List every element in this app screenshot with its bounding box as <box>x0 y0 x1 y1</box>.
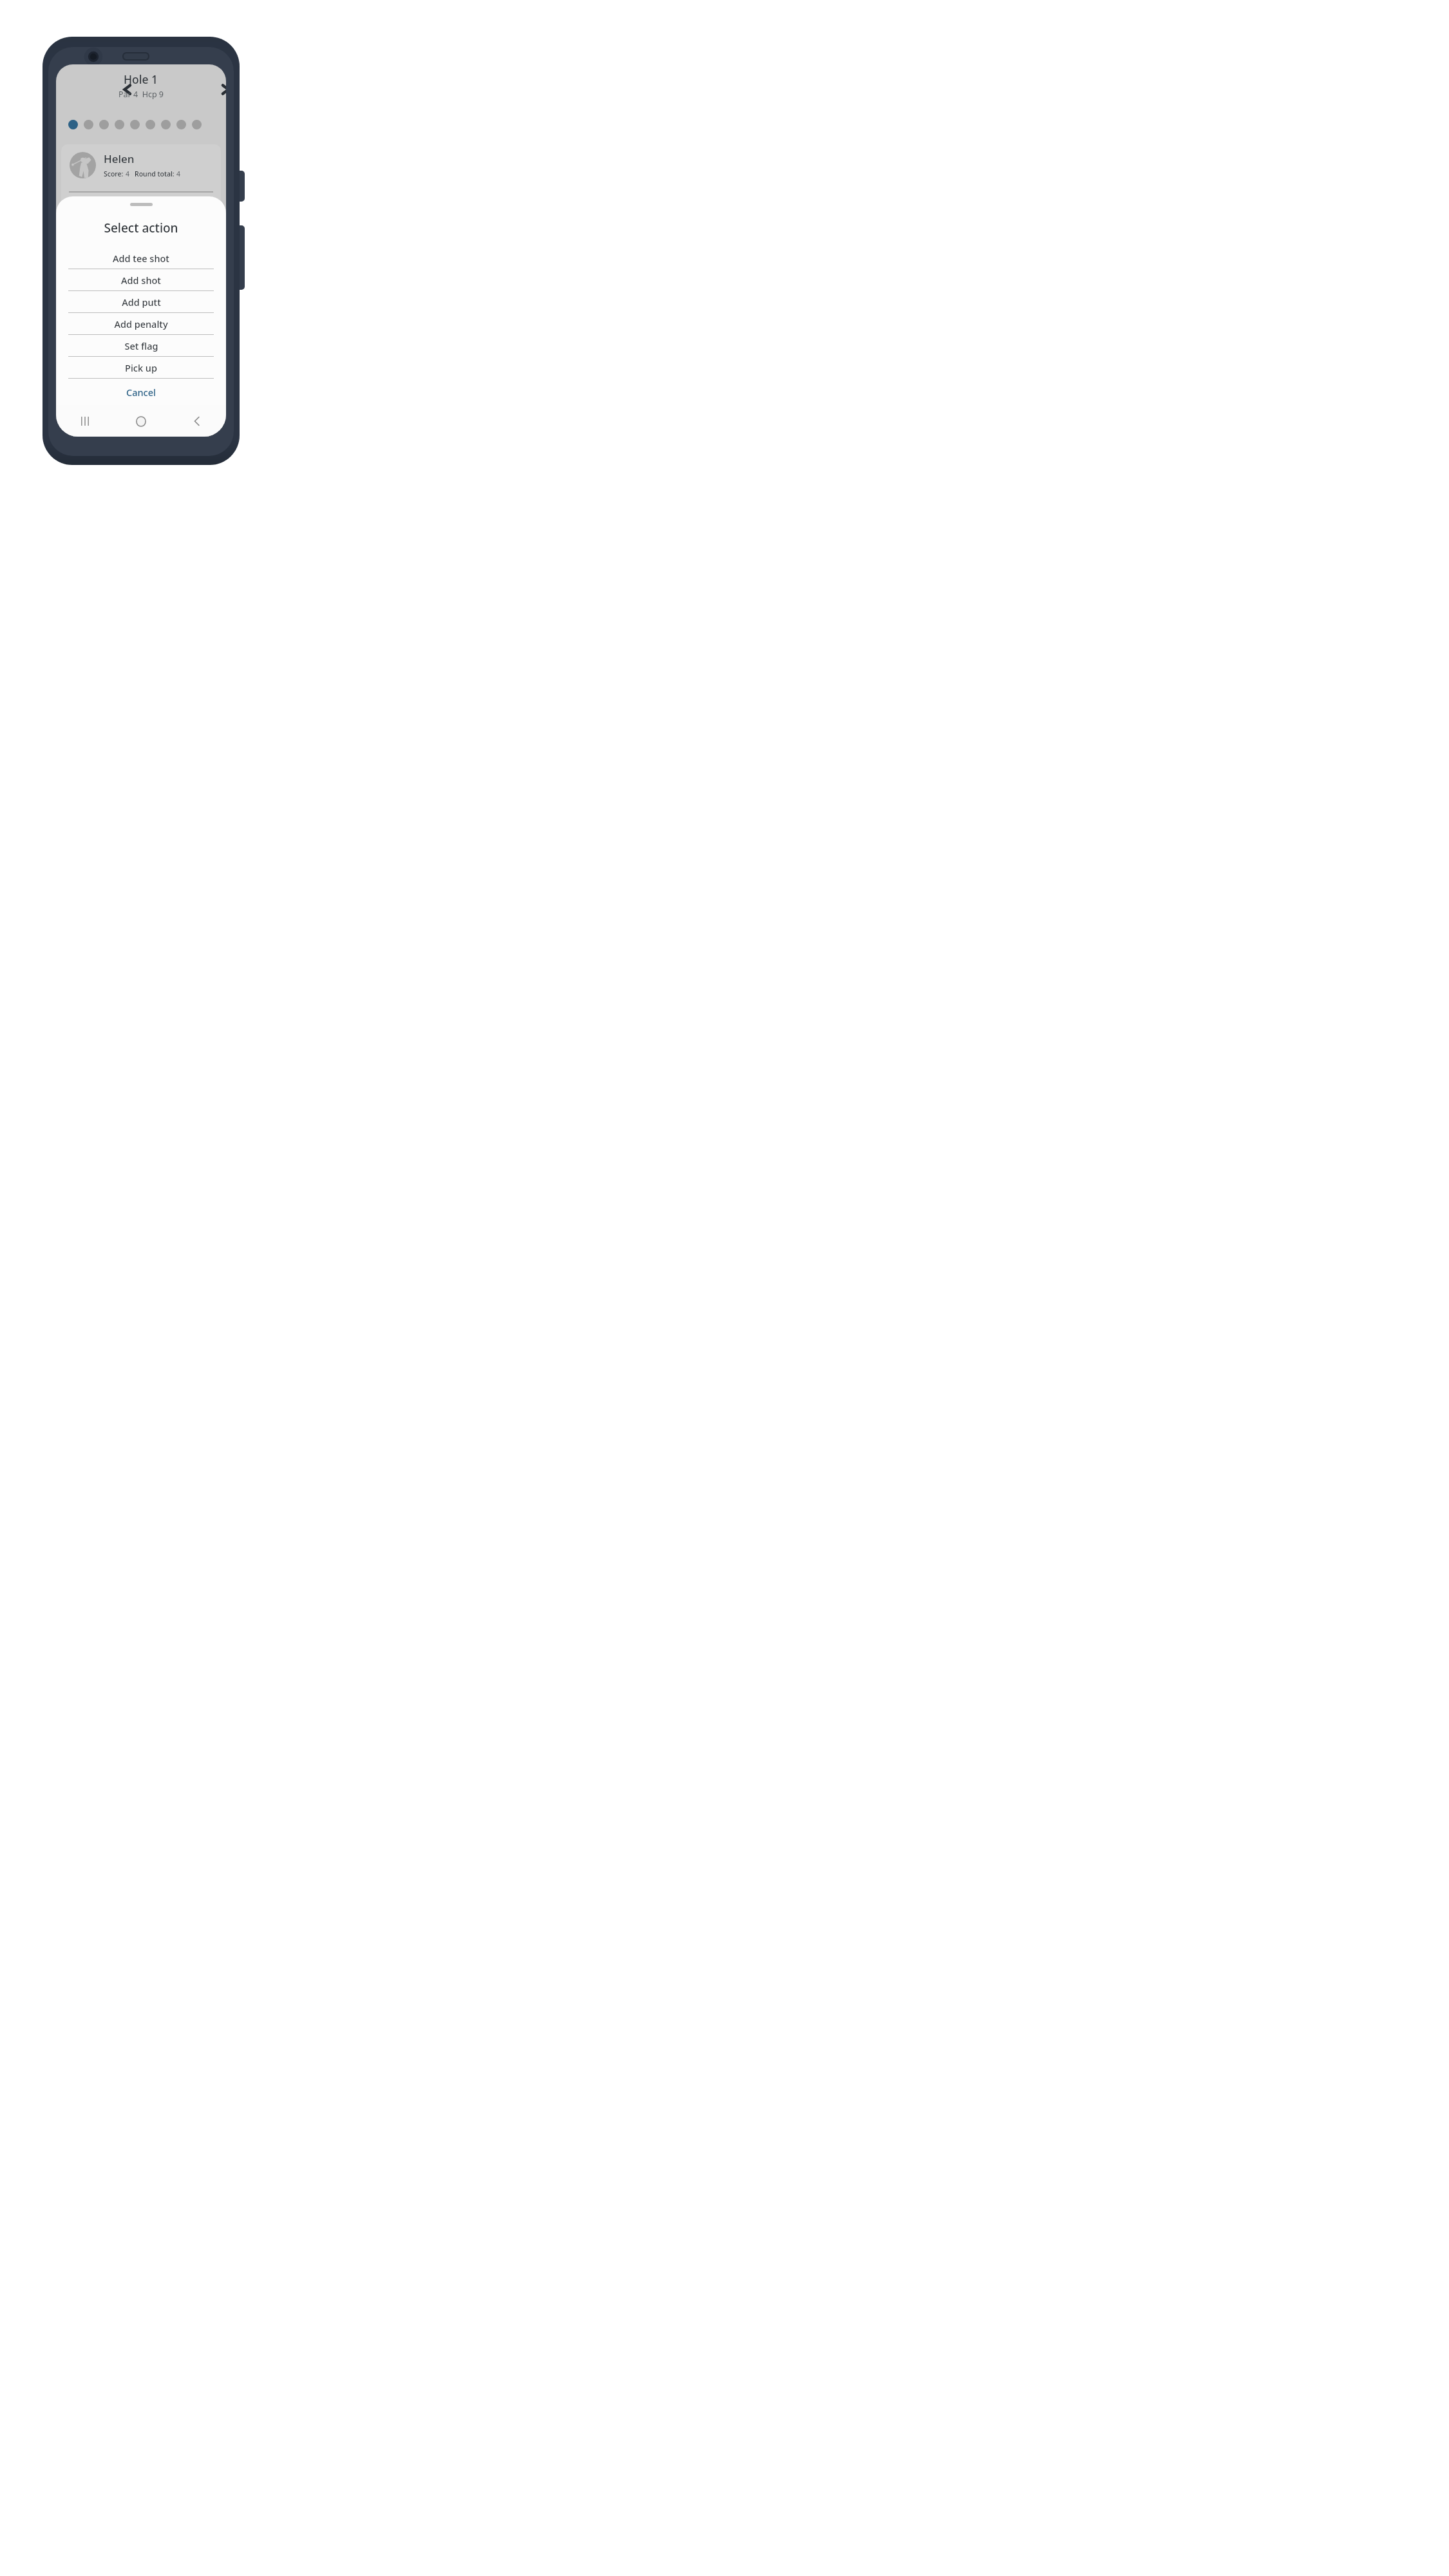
button[interactable]: Previous hole <box>115 77 140 102</box>
staticText: 4 <box>176 169 181 178</box>
staticText: Round total: <box>135 169 176 178</box>
other: Reorder <box>70 285 80 293</box>
button[interactable]: Add penalty <box>56 313 226 334</box>
staticText: Helen <box>104 151 135 166</box>
staticText: 4 <box>126 169 130 178</box>
button[interactable]: Add putt <box>56 291 226 312</box>
button[interactable]: Reorder <box>61 231 221 269</box>
staticText: Add penalty <box>114 317 168 330</box>
staticText: Fairway <box>87 249 115 260</box>
button[interactable]: Cancel <box>56 379 226 405</box>
button[interactable]: Reorder <box>61 269 221 307</box>
staticText: Score: <box>104 169 126 178</box>
staticText: Add putt <box>122 296 161 308</box>
staticText: Add shot <box>121 274 161 287</box>
button[interactable]: Add tee shot <box>56 247 226 269</box>
staticText: Hole 1 <box>124 71 158 87</box>
staticText: Par 4 Hcp 9 <box>118 89 164 100</box>
button[interactable]: Add shot <box>56 269 226 290</box>
staticText: Set flag <box>124 339 158 352</box>
button[interactable]: Pick up <box>56 357 226 378</box>
button[interactable]: Reorder <box>61 193 221 231</box>
button[interactable]: Set flag <box>56 335 226 356</box>
button[interactable]: Back <box>184 408 211 435</box>
staticText: Cancel <box>126 386 156 399</box>
button[interactable]: Next hole <box>213 77 226 102</box>
staticText: Pick up <box>125 361 157 374</box>
button[interactable]: Home <box>128 408 155 435</box>
staticText: Green <box>87 287 109 298</box>
button[interactable]: Recent apps <box>71 408 99 435</box>
staticText: Select action <box>56 220 226 236</box>
staticText: Add tee shot <box>113 252 169 265</box>
